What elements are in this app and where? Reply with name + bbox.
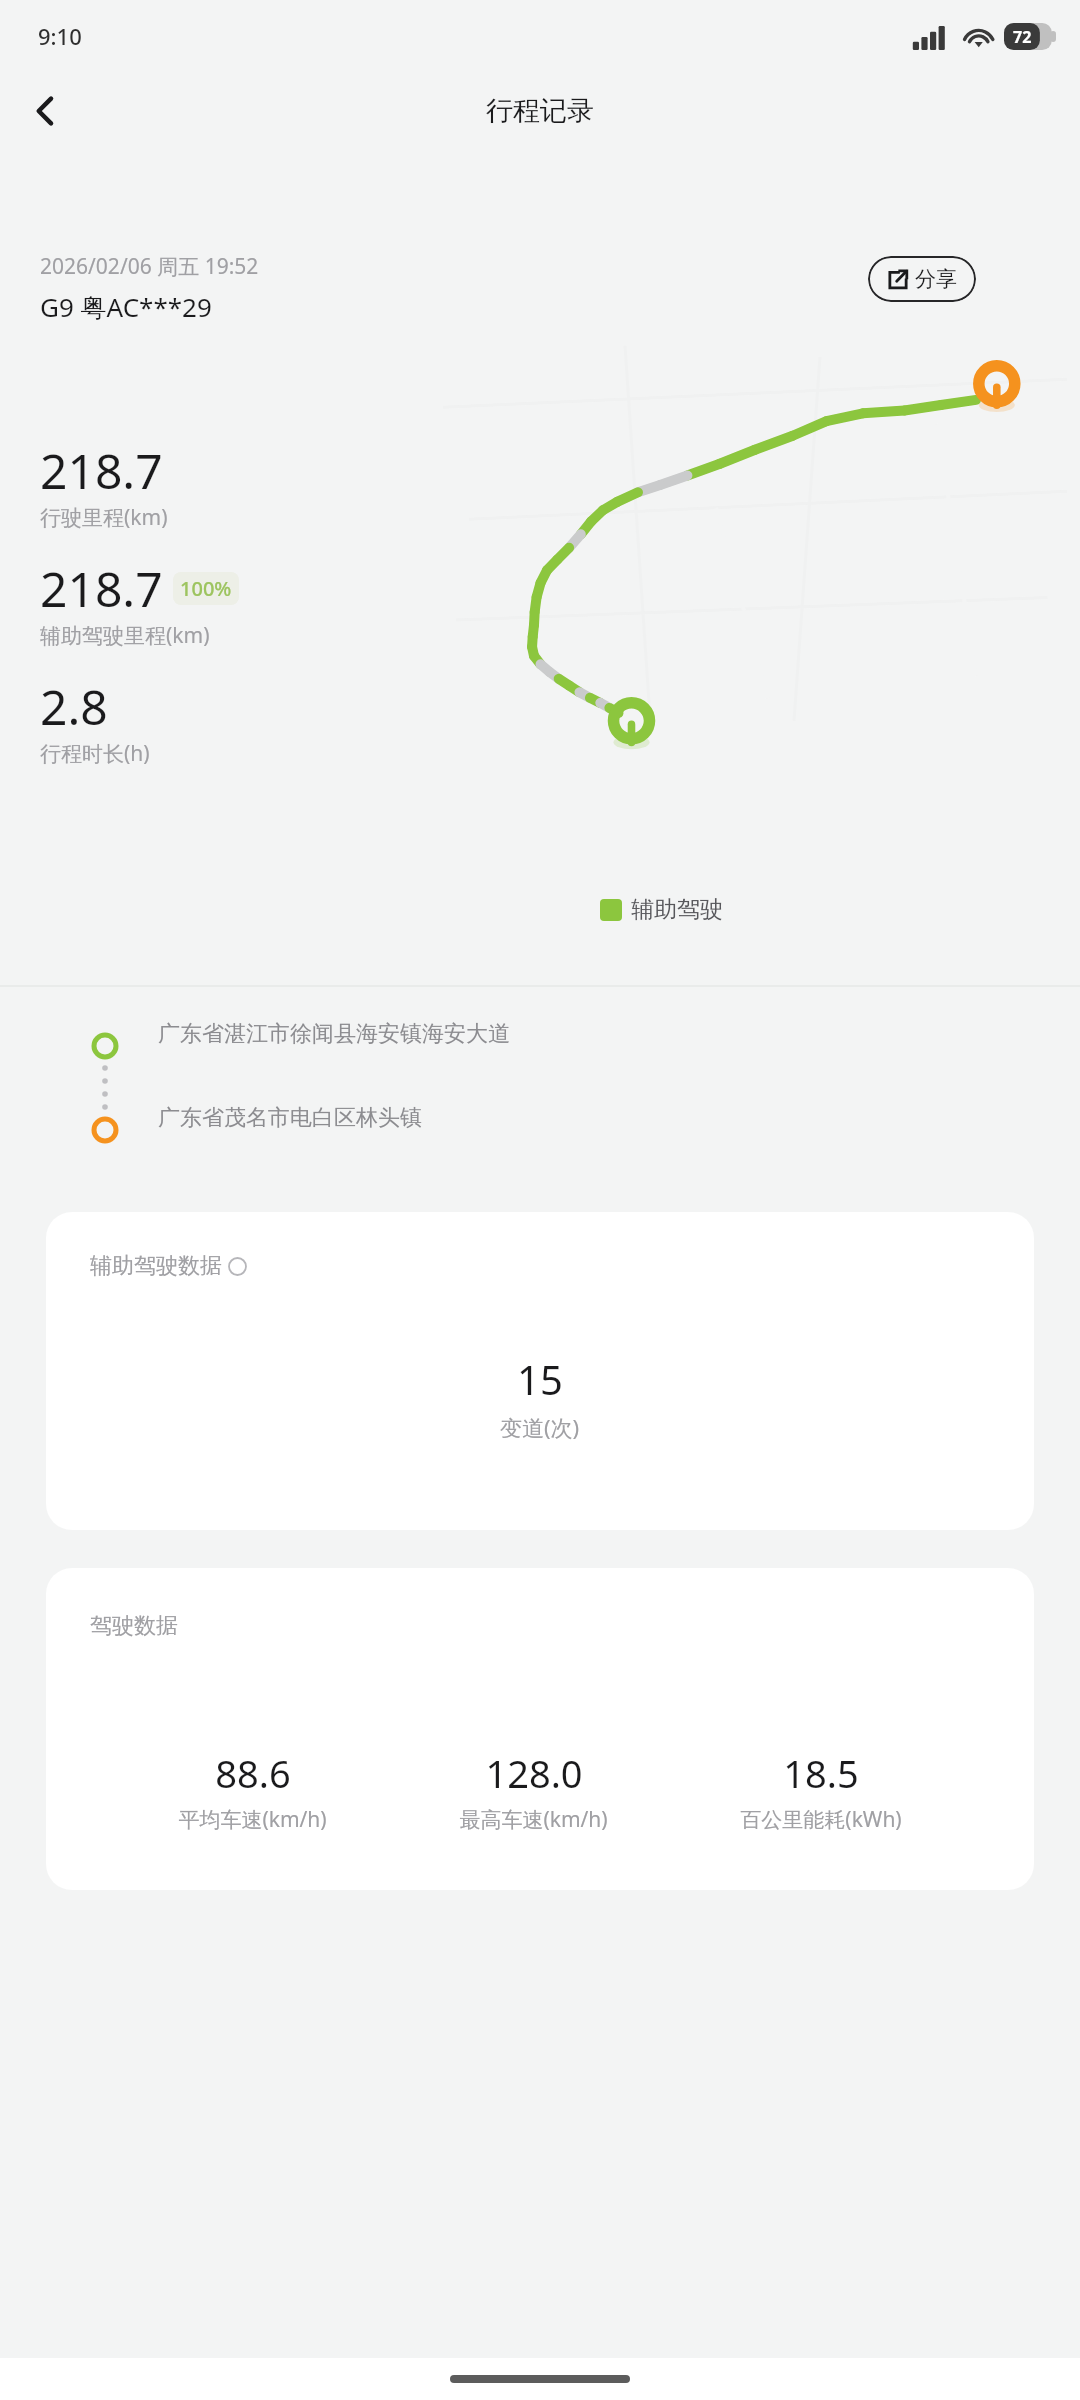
staticText: 行驶里程(km) xyxy=(40,503,168,532)
staticText: 百公里能耗(kWh) xyxy=(740,1805,902,1834)
staticText: 分享 xyxy=(915,266,957,292)
staticText: G9 粤AC***29 xyxy=(40,289,212,325)
staticText: 平均车速(km/h) xyxy=(178,1805,327,1834)
staticText: 72 xyxy=(1013,26,1032,48)
button[interactable]: 辅助驾驶数据 xyxy=(46,1212,1034,1530)
staticText: 辅助驾驶里程(km) xyxy=(40,621,210,650)
button[interactable]: Back xyxy=(16,81,76,141)
staticText: 辅助驾驶 xyxy=(631,895,723,924)
staticText: 辅助驾驶数据 xyxy=(90,1252,222,1280)
staticText: 15 xyxy=(517,1352,563,1406)
staticText: 18.5 xyxy=(783,1747,859,1799)
staticText: 广东省茂名市电白区林头镇 xyxy=(158,1104,422,1132)
button[interactable]: 驾驶数据 xyxy=(46,1568,1034,1890)
staticText: 驾驶数据 xyxy=(90,1612,178,1640)
staticText: 218.7 xyxy=(40,556,163,621)
staticText: 128.0 xyxy=(485,1747,583,1799)
staticText: 行程时长(h) xyxy=(40,739,150,768)
staticText: 变道(次) xyxy=(500,1412,580,1442)
staticText: 218.7 xyxy=(40,438,163,503)
staticText: 9:10 xyxy=(38,21,82,51)
staticText: 100% xyxy=(180,575,232,602)
staticText: 2.8 xyxy=(40,674,108,739)
staticText: 行程记录 xyxy=(486,94,594,128)
staticText: 最高车速(km/h) xyxy=(459,1805,608,1834)
staticText: 88.6 xyxy=(215,1747,291,1799)
button[interactable]: 分享 xyxy=(868,256,976,302)
staticText: 2026/02/06 周五 19:52 xyxy=(40,252,259,281)
staticText: 广东省湛江市徐闻县海安镇海安大道 xyxy=(158,1020,510,1048)
